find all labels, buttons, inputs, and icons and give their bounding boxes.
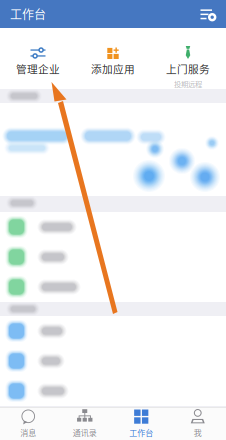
- button[interactable]: 设置: [199, 5, 217, 23]
- button[interactable]: [0, 376, 226, 406]
- staticText: 我: [194, 427, 202, 438]
- button[interactable]: 添加应用: [75, 42, 150, 89]
- staticText: 添加应用: [91, 61, 135, 76]
- staticText: 投期远程: [174, 78, 202, 89]
- staticText: 上门服务: [166, 61, 210, 76]
- button[interactable]: 管理企业: [0, 42, 75, 89]
- button[interactable]: 我: [169, 407, 226, 440]
- button[interactable]: 通讯录: [56, 407, 113, 440]
- staticText: 通讯录: [73, 427, 97, 438]
- button[interactable]: [0, 212, 226, 242]
- staticText: 消息: [20, 427, 36, 438]
- button[interactable]: 消息: [0, 407, 56, 440]
- staticText: 管理企业: [16, 61, 60, 76]
- button[interactable]: [0, 346, 226, 376]
- button[interactable]: [0, 316, 226, 346]
- button[interactable]: [0, 242, 226, 272]
- staticText: 工作台: [129, 427, 153, 438]
- button[interactable]: [0, 272, 226, 302]
- staticText: 工作台: [10, 5, 46, 23]
- button[interactable]: 上门服务: [150, 42, 225, 89]
- button[interactable]: 工作台: [113, 407, 169, 440]
